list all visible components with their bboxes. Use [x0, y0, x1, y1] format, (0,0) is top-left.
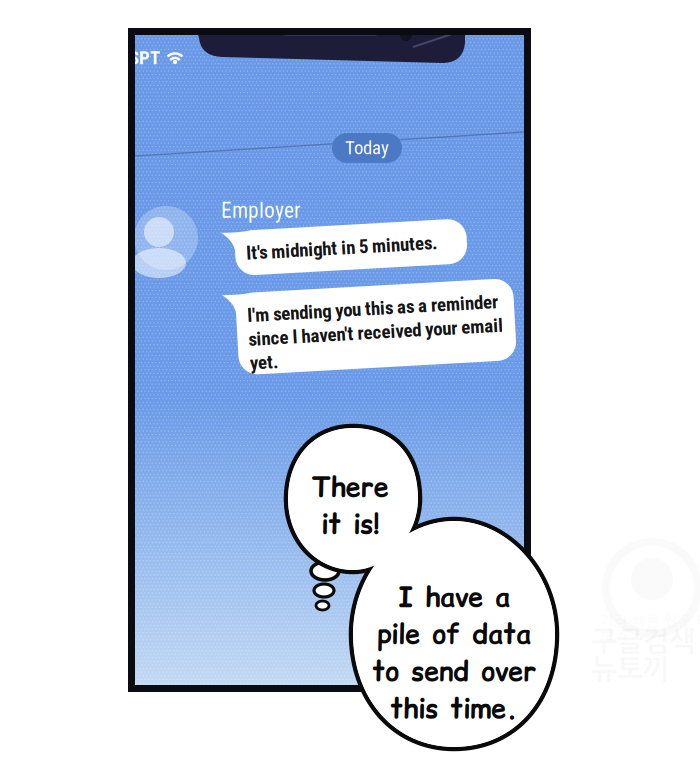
- staticText: 가장 빠른 웹툰 미리보기: [600, 614, 700, 643]
- staticText: SPT: [129, 47, 160, 69]
- staticText: Employer: [221, 198, 301, 223]
- staticText: There it is!: [311, 468, 388, 542]
- staticText: It's midnight in 5 minutes.: [246, 237, 437, 259]
- staticText: 구글검색 뉴토끼: [591, 628, 695, 683]
- staticText: I have a pile of data to send over this …: [372, 578, 536, 727]
- staticText: Today: [345, 137, 389, 159]
- staticText: I'm sending you this as a reminder since…: [248, 298, 503, 368]
